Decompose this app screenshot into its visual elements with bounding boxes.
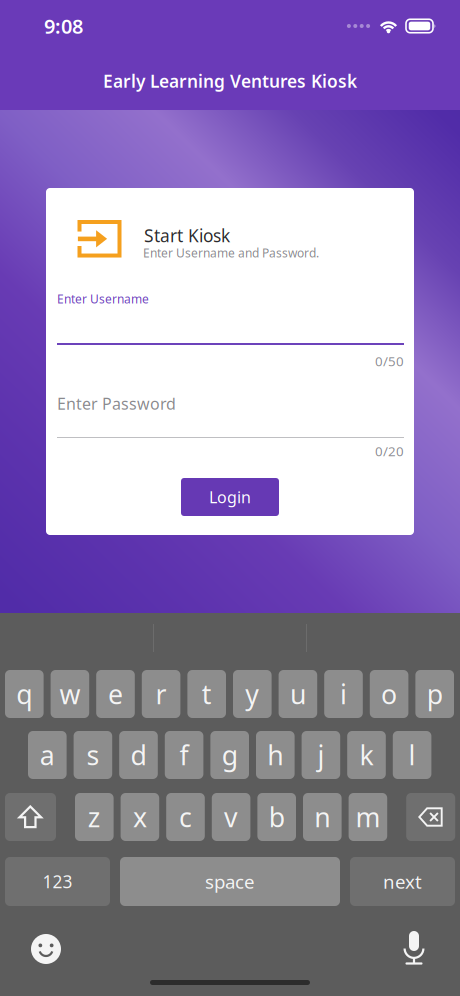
- staticText: m: [355, 799, 380, 835]
- button[interactable]: space: [120, 857, 340, 906]
- staticText: h: [267, 737, 283, 773]
- button[interactable]: w: [51, 670, 89, 718]
- button[interactable]: Login: [181, 478, 279, 516]
- button[interactable]: g: [210, 731, 249, 779]
- staticText: f: [180, 737, 189, 773]
- staticText: z: [88, 799, 101, 835]
- button[interactable]: Shift: [5, 793, 56, 841]
- button[interactable]: e: [96, 670, 135, 718]
- button[interactable]: b: [257, 793, 296, 841]
- staticText: d: [130, 737, 146, 773]
- staticText: Enter Username and Password.: [143, 245, 319, 261]
- staticText: g: [222, 737, 238, 773]
- button[interactable]: m: [349, 793, 387, 841]
- staticText: c: [179, 799, 192, 835]
- staticText: x: [133, 799, 147, 835]
- button[interactable]: Emoji keyboard: [30, 933, 62, 965]
- button[interactable]: u: [279, 670, 317, 718]
- button[interactable]: q: [5, 670, 44, 718]
- button[interactable]: o: [370, 670, 408, 718]
- button[interactable]: h: [256, 731, 295, 779]
- staticText: i: [340, 676, 347, 712]
- staticText: o: [381, 676, 397, 712]
- staticText: 0/20: [375, 442, 404, 460]
- button[interactable]: k: [347, 731, 386, 779]
- staticText: r: [156, 676, 167, 712]
- staticText: t: [202, 676, 212, 712]
- button[interactable]: l: [393, 731, 431, 779]
- button[interactable]: d: [119, 731, 158, 779]
- staticText: u: [290, 676, 306, 712]
- staticText: 123: [42, 870, 72, 893]
- button[interactable]: z: [75, 793, 114, 841]
- button[interactable]: c: [166, 793, 205, 841]
- staticText: v: [224, 799, 238, 835]
- staticText: y: [245, 676, 259, 712]
- button[interactable]: y: [233, 670, 272, 718]
- button[interactable]: 123: [5, 857, 110, 906]
- staticText: 0/50: [375, 352, 404, 370]
- button[interactable]: r: [142, 670, 180, 718]
- staticText: e: [108, 676, 123, 712]
- button[interactable]: Dictation: [402, 931, 426, 965]
- staticText: s: [86, 737, 99, 773]
- button[interactable]: p: [415, 670, 454, 718]
- staticText: Early Learning Ventures Kiosk: [103, 69, 357, 92]
- staticText: b: [269, 799, 285, 835]
- button[interactable]: next: [350, 857, 455, 906]
- staticText: k: [359, 737, 373, 773]
- staticText: space: [205, 869, 255, 894]
- button[interactable]: i: [324, 670, 363, 718]
- staticText: n: [314, 799, 330, 835]
- button[interactable]: j: [302, 731, 340, 779]
- staticText: a: [40, 737, 55, 773]
- button[interactable]: x: [121, 793, 159, 841]
- button[interactable]: a: [28, 731, 67, 779]
- staticText: Enter Username: [57, 291, 149, 307]
- button[interactable]: Delete: [406, 793, 455, 841]
- staticText: j: [317, 737, 324, 773]
- button[interactable]: t: [187, 670, 226, 718]
- staticText: q: [16, 676, 32, 712]
- staticText: Enter Password: [57, 393, 176, 414]
- staticText: Start Kiosk: [144, 224, 230, 247]
- button[interactable]: v: [212, 793, 250, 841]
- staticText: w: [59, 676, 80, 712]
- button[interactable]: n: [303, 793, 342, 841]
- staticText: 9:08: [44, 13, 83, 39]
- button[interactable]: s: [74, 731, 112, 779]
- staticText: p: [427, 676, 443, 712]
- staticText: Login: [209, 486, 251, 508]
- staticText: l: [409, 737, 416, 773]
- staticText: next: [383, 869, 422, 894]
- button[interactable]: f: [165, 731, 203, 779]
